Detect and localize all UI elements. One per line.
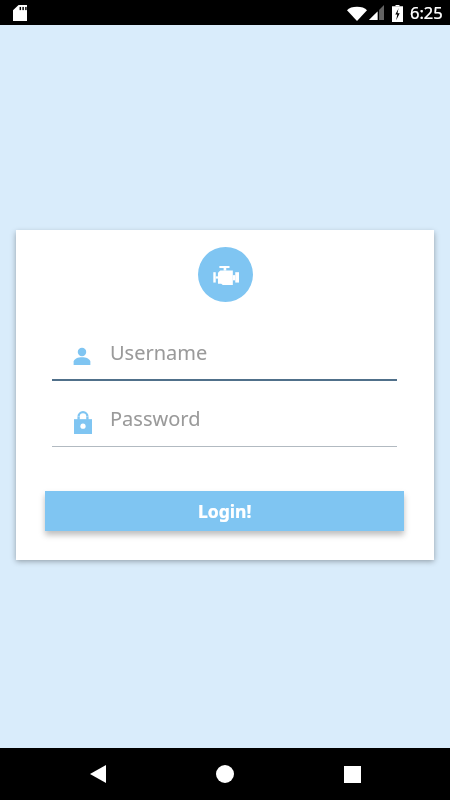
staticText: Login! — [198, 499, 252, 523]
button[interactable]: Home — [175, 748, 275, 800]
button[interactable]: Back — [48, 748, 148, 800]
staticText: Password — [110, 405, 201, 432]
staticText: 6:25 — [410, 1, 443, 23]
staticText: Username — [110, 339, 208, 366]
button[interactable]: Login! — [45, 491, 404, 531]
button[interactable]: Recent apps — [302, 748, 402, 800]
button[interactable]: Password — [52, 404, 397, 447]
button[interactable]: Username — [52, 338, 397, 381]
